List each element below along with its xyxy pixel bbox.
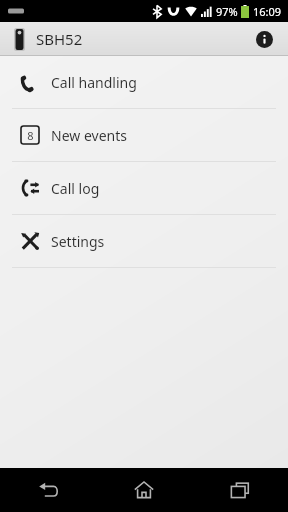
- button[interactable]: Info: [250, 25, 278, 53]
- staticText: Call handling: [51, 73, 137, 92]
- staticText: 16:09: [253, 4, 282, 19]
- staticText: New events: [51, 126, 127, 145]
- button[interactable]: Back: [0, 468, 96, 512]
- button[interactable]: Home: [96, 468, 192, 512]
- staticText: 8: [27, 128, 34, 143]
- button[interactable]: Settings: [0, 215, 288, 267]
- staticText: Settings: [51, 232, 105, 251]
- staticText: Call log: [51, 179, 100, 198]
- button[interactable]: Recent apps: [192, 468, 288, 512]
- staticText: SBH52: [36, 29, 83, 49]
- button[interactable]: Call log: [0, 162, 288, 214]
- button[interactable]: Call handling: [0, 56, 288, 108]
- button[interactable]: 8: [0, 109, 288, 161]
- staticText: 97%: [216, 4, 238, 19]
